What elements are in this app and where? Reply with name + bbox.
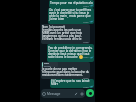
staticText: MMR avec un prète que hais xyxy=(42,31,82,35)
button[interactable]: Marc xyxy=(41,62,90,79)
staticText: 10:50 xyxy=(83,86,89,88)
staticText: 10:44 xyxy=(83,5,89,8)
staticText: Ou c'est parce que tu préfères xyxy=(49,8,92,12)
button[interactable]: Emoji xyxy=(41,89,85,98)
staticText: 10:45 xyxy=(83,21,89,24)
button[interactable]: Pas de problème je comprends. xyxy=(47,44,94,62)
staticText: Marc xyxy=(44,62,49,65)
button[interactable]: Ou c'est parce que tu préfères xyxy=(48,8,94,24)
other: Emoji xyxy=(42,92,46,96)
staticText: Et hiseb rendez-vous chez le xyxy=(42,37,82,41)
staticText: restaurant bien évidemment. xyxy=(42,73,83,77)
staticText: Non j'ai pourrait xyxy=(42,25,65,29)
staticText: 10:48 xyxy=(83,77,89,79)
staticText: 10:46 xyxy=(83,41,89,44)
other: Camera xyxy=(80,92,84,96)
staticText: Mdrr xyxy=(51,82,59,86)
staticText: Pas de problème je comprends. xyxy=(48,46,93,50)
staticText: n'importe quoi dans la bouche du xyxy=(42,70,89,74)
button[interactable]: Non j'ai pourrait xyxy=(41,24,90,44)
staticText: Dernier que la dernière chez le xyxy=(48,49,92,53)
staticText: Message xyxy=(47,92,61,96)
staticText: Je parle de ne pas mettre xyxy=(42,67,78,71)
staticText: avoir le contrôle si tu veux je xyxy=(49,11,90,15)
staticText: cède la main , mais parce que xyxy=(49,14,91,18)
staticText: Tempx pour ma réputation alors xyxy=(50,1,93,5)
staticText: dentiste veut mieux quel tout xyxy=(48,52,90,56)
staticText: Et j'espère que tu nas laissé xyxy=(51,79,90,83)
staticText: 10:47 xyxy=(83,56,89,59)
button[interactable]: Et j'espère que tu nas laissé xyxy=(50,79,94,88)
staticText: longtemps qu'on a pas joué. xyxy=(42,34,82,38)
other: Attach file xyxy=(74,92,78,96)
button[interactable]: Tempx pour ma réputation alors xyxy=(49,0,94,8)
button[interactable]: Record voice message xyxy=(86,89,94,97)
staticText: journée xyxy=(44,65,51,67)
staticText: fermais apprès les précu un xyxy=(42,28,82,32)
staticText: soitel dans le bouche xyxy=(48,55,78,59)
staticText: j'aime bien xyxy=(49,17,65,21)
